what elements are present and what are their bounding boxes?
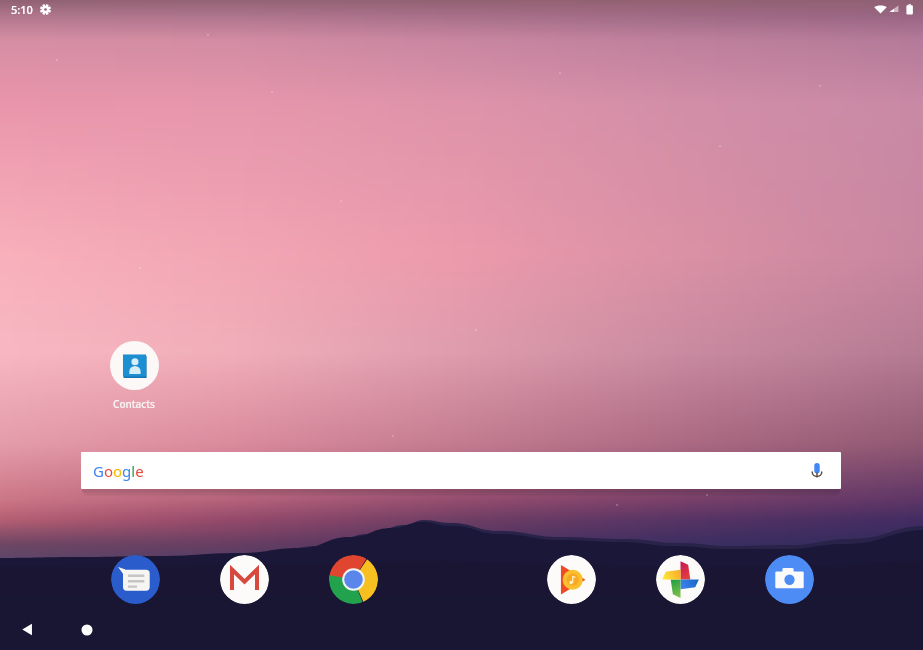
button[interactable]: Back — [16, 618, 39, 641]
other: Voice search — [807, 461, 827, 481]
other: Settings — [40, 4, 51, 15]
button[interactable]: Chrome — [329, 555, 378, 604]
button[interactable]: Google — [81, 452, 841, 489]
staticText: Contacts — [108, 397, 160, 411]
button[interactable]: Messages — [111, 555, 160, 604]
staticText: 5:10 — [11, 2, 33, 17]
button[interactable]: Camera — [765, 555, 814, 604]
staticText: Google — [93, 461, 144, 481]
button[interactable]: Photos — [656, 555, 705, 604]
button[interactable]: Home — [75, 618, 98, 641]
button[interactable]: Gmail — [220, 555, 269, 604]
button[interactable]: Play Music — [547, 555, 596, 604]
button[interactable]: Contacts — [108, 341, 160, 411]
